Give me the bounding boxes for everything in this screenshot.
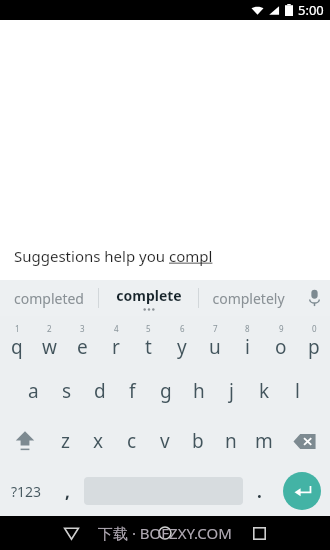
staticText: k [259,378,270,404]
button[interactable]: Back [48,518,94,548]
button[interactable]: d [83,366,116,416]
staticText: 4 [114,323,119,334]
staticText: 8 [245,323,250,334]
button[interactable]: z [49,416,82,466]
button[interactable]: c [115,416,148,466]
button[interactable]: completely [199,280,298,316]
button[interactable]: 2 [33,316,66,366]
staticText: , [65,480,70,503]
staticText: b [192,428,204,454]
staticText: u [209,334,221,360]
button[interactable]: 7 [198,316,231,366]
button[interactable]: f [116,366,149,416]
staticText: 7 [213,323,218,334]
staticText: e [77,334,88,360]
button[interactable]: b [181,416,214,466]
staticText: h [193,378,205,404]
button[interactable]: Shift [0,416,49,466]
staticText: 3 [80,323,85,334]
staticText: 0 [312,323,317,334]
button[interactable]: complete [99,280,198,316]
staticText: complete [116,286,182,305]
staticText: Suggestions help you [14,246,169,266]
staticText: j [229,378,234,404]
button[interactable]: g [149,366,182,416]
button[interactable]: 5 [132,316,165,366]
staticText: 9 [279,323,284,334]
button[interactable]: 0 [297,316,330,366]
staticText: y [177,334,187,360]
button[interactable]: n [214,416,247,466]
button[interactable]: 3 [66,316,99,366]
button[interactable]: Voice input [298,280,330,316]
staticText: c [127,428,137,454]
button[interactable]: Home [142,518,188,548]
staticText: 5 [146,323,151,334]
staticText: 1 [15,323,20,334]
staticText: completely [212,289,285,308]
button[interactable]: v [148,416,181,466]
staticText: r [112,334,120,360]
staticText: i [245,334,250,360]
staticText: w [42,334,57,360]
button[interactable]: Backspace [280,416,330,466]
staticText: 下载 · BOFZXY.COM [98,523,232,543]
button[interactable]: x [82,416,115,466]
staticText: x [93,428,104,454]
staticText: 2 [47,323,52,334]
staticText: ?123 [11,482,42,501]
staticText: o [275,334,287,360]
button[interactable]: j [215,366,248,416]
staticText: 5:00 [298,1,324,19]
staticText: compl [169,246,213,266]
button[interactable]: . [245,466,274,516]
button[interactable]: k [248,366,281,416]
staticText: . [257,480,262,503]
button[interactable]: 9 [264,316,297,366]
button[interactable]: 6 [165,316,198,366]
staticText: completed [14,289,84,308]
staticText: z [61,428,70,454]
staticText: l [295,378,300,404]
button[interactable]: m [247,416,280,466]
staticText: f [129,378,136,404]
button[interactable]: Recent apps [236,518,282,548]
staticText: 6 [180,323,185,334]
button[interactable]: ?123 [0,466,53,516]
button[interactable]: h [182,366,215,416]
staticText: t [145,334,152,360]
button[interactable]: 1 [0,316,33,366]
staticText: n [225,428,237,454]
button[interactable]: completed [0,280,98,316]
button[interactable]: Enter [283,472,321,510]
staticText: d [94,378,106,404]
button[interactable]: l [281,366,314,416]
staticText: q [11,334,23,360]
button[interactable]: 4 [99,316,132,366]
button[interactable]: 8 [231,316,264,366]
button[interactable]: , [53,466,82,516]
button[interactable]: s [50,366,83,416]
staticText: v [160,428,170,454]
staticText: s [62,378,72,404]
staticText: g [160,378,172,404]
button[interactable]: a [16,366,50,416]
staticText: m [255,428,273,454]
staticText: p [308,334,320,360]
staticText: a [28,378,39,404]
